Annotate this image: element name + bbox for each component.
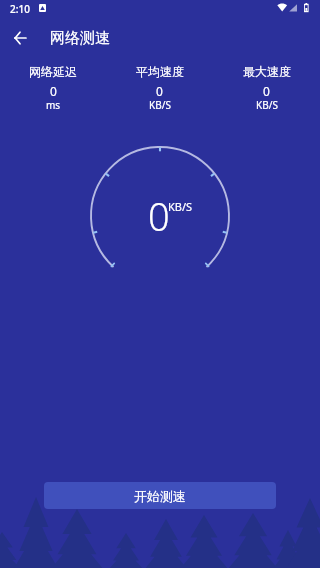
staticText: KB/S — [149, 98, 171, 112]
staticText: 0 — [263, 83, 270, 99]
staticText: 开始测速 — [134, 488, 186, 504]
staticText: 0 — [156, 83, 163, 99]
staticText: 网络测速 — [50, 29, 110, 48]
staticText: 2:10 — [10, 2, 30, 16]
button[interactable]: 开始测速 — [44, 482, 276, 509]
staticText: 网络延迟 — [29, 64, 77, 79]
staticText: 0 — [148, 190, 170, 242]
button[interactable]: Back — [0, 22, 40, 54]
staticText: ms — [46, 98, 61, 112]
staticText: 最大速度 — [243, 64, 291, 79]
staticText: KB/S — [168, 199, 193, 214]
staticText: KB/S — [256, 98, 278, 112]
staticText: 平均速度 — [136, 64, 184, 79]
staticText: 0 — [50, 83, 57, 99]
